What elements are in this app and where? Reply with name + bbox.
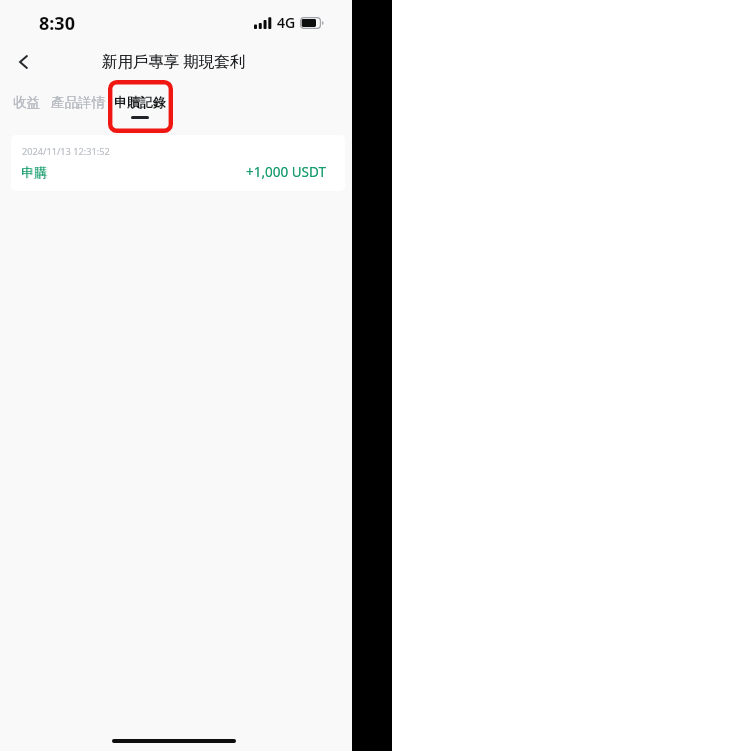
staticText: 4G [277, 13, 296, 32]
button[interactable]: 收益 [7, 89, 46, 116]
staticText: 收益 [13, 94, 40, 111]
staticText: 申贖記錄 [114, 94, 166, 110]
staticText: 2024/11/13 12:31:52 [22, 145, 110, 158]
staticText: 產品詳情 [51, 94, 105, 111]
button[interactable]: 2024/11/13 12:31:52 [11, 135, 345, 191]
staticText: 4G [277, 13, 296, 32]
button[interactable]: 產品詳情 [45, 89, 111, 116]
staticText: 申購 [21, 164, 47, 180]
staticText: +1,000 USDT [246, 163, 326, 181]
staticText: 新用戶專享 期現套利 [102, 50, 246, 71]
staticText: 申購 [22, 164, 48, 180]
button[interactable]: 申贖記錄 [108, 84, 172, 129]
staticText: 收益 [13, 94, 40, 111]
staticText: 產品詳情 [51, 94, 105, 111]
button[interactable]: Back [7, 46, 39, 78]
staticText: +1,000 USDT [246, 163, 326, 181]
staticText: 新用戶專享 期現套利 [102, 50, 246, 71]
staticText: 8:30 [39, 11, 75, 36]
